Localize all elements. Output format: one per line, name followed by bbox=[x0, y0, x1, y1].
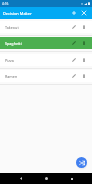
button[interactable]: Add item bbox=[68, 7, 80, 19]
staticText: 4:16 bbox=[2, 2, 9, 6]
staticText: Ramen bbox=[5, 74, 18, 79]
button[interactable]: Delete Ramen bbox=[78, 70, 90, 82]
button[interactable]: Delete Pizza bbox=[78, 54, 90, 66]
button[interactable]: Takeout bbox=[0, 21, 92, 33]
button[interactable]: Clear all bbox=[78, 7, 90, 19]
button[interactable]: Pizza bbox=[0, 54, 92, 66]
button[interactable]: Edit Spaghetti bbox=[68, 37, 80, 49]
button[interactable]: Edit Ramen bbox=[68, 70, 80, 82]
button[interactable]: Home bbox=[41, 173, 52, 184]
button[interactable]: Delete Spaghetti bbox=[78, 37, 90, 49]
button[interactable]: Ramen bbox=[0, 70, 92, 82]
button[interactable]: Back bbox=[15, 173, 26, 184]
button[interactable]: Recent apps bbox=[66, 173, 77, 184]
staticText: Takeout bbox=[5, 25, 19, 30]
button[interactable]: Edit Pizza bbox=[68, 54, 80, 66]
button[interactable]: Shuffle bbox=[76, 157, 87, 168]
button[interactable]: Delete Takeout bbox=[78, 21, 90, 33]
staticText: Pizza bbox=[5, 58, 14, 63]
staticText: Decision Maker bbox=[3, 11, 32, 16]
staticText: Spaghetti bbox=[5, 41, 22, 46]
button[interactable]: Spaghetti bbox=[0, 37, 92, 49]
button[interactable]: Edit Takeout bbox=[68, 21, 80, 33]
